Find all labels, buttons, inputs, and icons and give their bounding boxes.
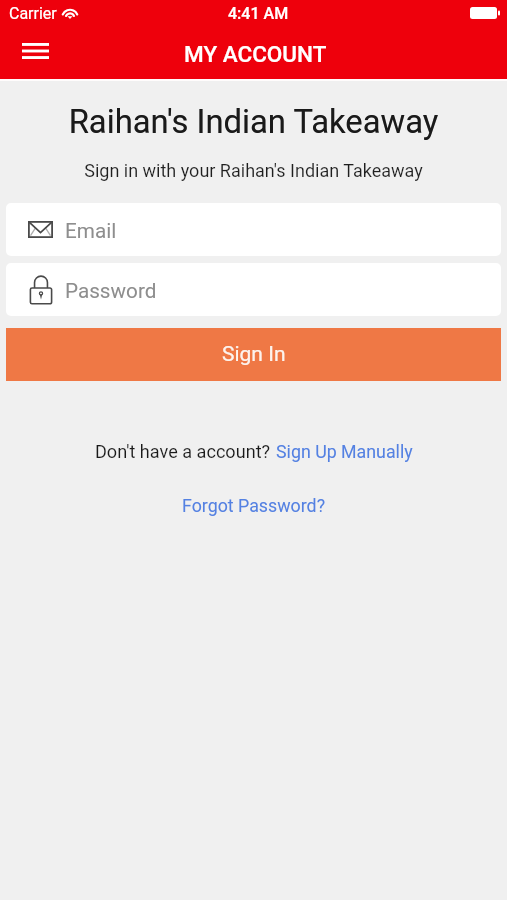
staticText: Email (65, 219, 117, 243)
button[interactable]: Forgot Password? (182, 495, 326, 516)
staticText: 4:41 AM (228, 4, 289, 23)
staticText: Sign In (222, 342, 286, 367)
button[interactable]: Sign In (6, 328, 501, 381)
staticText: Sign in with your Raihan's Indian Takeaw… (0, 160, 507, 181)
staticText: Carrier (9, 4, 57, 23)
staticText: Raihan's Indian Takeaway (0, 103, 507, 141)
button[interactable]: Password (6, 263, 501, 316)
button[interactable]: Email (6, 203, 501, 256)
staticText: Password (65, 279, 157, 303)
staticText: Raihan's Indian Takeaway (0, 103, 507, 141)
staticText: Don't have a account? (95, 441, 271, 462)
staticText: MY ACCOUNT (184, 41, 327, 67)
staticText: Sign Up Manually (276, 441, 413, 462)
button[interactable]: Open navigation menu (6, 26, 64, 79)
staticText: Forgot Password? (182, 495, 326, 516)
button[interactable]: Sign Up Manually (276, 441, 413, 462)
